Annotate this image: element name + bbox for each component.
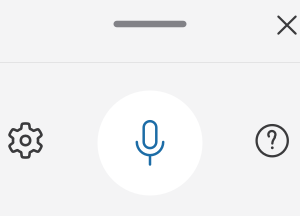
button[interactable]: Close [265, 3, 300, 47]
button[interactable]: Settings [0, 115, 51, 166]
button[interactable]: Record [97, 90, 202, 195]
button[interactable]: Help [247, 115, 298, 166]
